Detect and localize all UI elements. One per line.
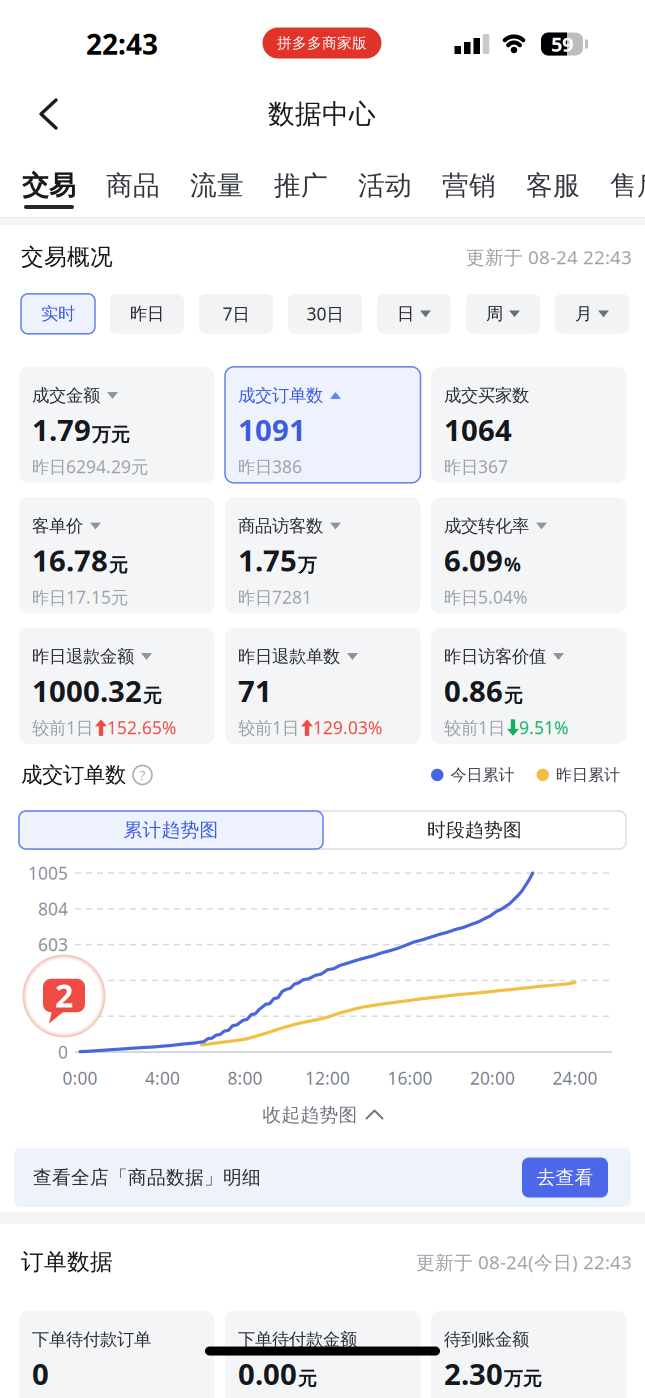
staticText: 804 — [38, 897, 68, 920]
staticText: 下单待付款订单 — [32, 1329, 151, 1350]
staticText: 数据中心 — [268, 98, 376, 130]
staticText: 售后 — [610, 169, 645, 202]
staticText: 0:00 — [62, 1066, 97, 1089]
staticText: ? — [139, 766, 145, 784]
button[interactable]: 30日 — [288, 294, 362, 334]
staticText: 成交买家数 — [444, 385, 529, 406]
staticText: 昨日6294.29元 — [32, 455, 148, 478]
button[interactable]: 收起趋势图 — [0, 1102, 645, 1128]
button[interactable]: 日 — [377, 294, 451, 334]
button[interactable]: 昨日访客价值 — [431, 628, 626, 744]
staticText: 元 — [143, 684, 162, 707]
staticText: 59 — [551, 31, 573, 57]
button[interactable]: 昨日 — [110, 294, 184, 334]
staticText: 成交订单数 — [21, 762, 126, 788]
button[interactable]: 交易 — [22, 169, 76, 202]
button[interactable]: 售后 — [610, 169, 645, 202]
staticText: 1005 — [28, 861, 68, 884]
button[interactable]: 商品 — [106, 169, 160, 202]
button[interactable]: 查看全店「商品数据」明细 — [14, 1148, 631, 1207]
staticText: 交易 — [22, 169, 76, 202]
button[interactable]: 成交订单数 — [225, 367, 420, 483]
button[interactable]: 昨日退款单数 — [225, 628, 420, 744]
staticText: 6.09 — [444, 541, 503, 580]
staticText: 今日累计 — [450, 765, 514, 785]
staticText: 查看全店「商品数据」明细 — [33, 1166, 261, 1189]
button[interactable]: 下单待付款订单 — [19, 1311, 214, 1398]
staticText: 万元 — [504, 1367, 542, 1390]
staticText: 1.75 — [238, 541, 297, 580]
staticText: 201 — [38, 1005, 68, 1028]
staticText: 昨日7281 — [238, 586, 312, 609]
button[interactable]: 月 — [555, 294, 629, 334]
staticText: 24:00 — [552, 1066, 597, 1089]
staticText: 更新于 08-24(今日) 22:43 — [416, 1250, 632, 1274]
staticText: 元 — [298, 1367, 317, 1390]
staticText: 成交转化率 — [444, 515, 529, 537]
staticText: 元 — [109, 554, 128, 577]
staticText: 较前1日 — [444, 716, 505, 739]
staticText: 12:00 — [305, 1066, 350, 1089]
staticText: 去查看 — [536, 1166, 593, 1189]
button[interactable]: 昨日退款金额 — [19, 628, 214, 744]
button[interactable]: 流量 — [190, 169, 244, 202]
staticText: 商品访客数 — [238, 515, 323, 537]
staticText: 2.30 — [444, 1354, 503, 1393]
staticText: 流量 — [190, 169, 244, 202]
staticText: 月 — [575, 303, 592, 324]
staticText: 8:00 — [227, 1066, 262, 1089]
staticText: 0 — [58, 1040, 68, 1063]
button[interactable]: Messages — [22, 954, 106, 1038]
button[interactable]: 实时 — [21, 294, 95, 334]
staticText: 较前1日 — [238, 716, 299, 739]
button[interactable]: 去查看 — [522, 1157, 608, 1197]
staticText: 营销 — [442, 169, 496, 202]
button[interactable]: 推广 — [274, 169, 328, 202]
staticText: 20:00 — [470, 1066, 515, 1089]
button[interactable]: 待到账金额 — [431, 1311, 626, 1398]
staticText: 昨日17.15元 — [32, 586, 128, 609]
staticText: 22:43 — [86, 25, 158, 63]
button[interactable]: 客服 — [526, 169, 580, 202]
staticText: 客单价 — [32, 515, 83, 537]
staticText: 1000.32 — [32, 671, 142, 710]
staticText: 累计趋势图 — [123, 819, 218, 841]
button[interactable]: 周 — [466, 294, 540, 334]
button[interactable]: 营销 — [442, 169, 496, 202]
staticText: 万元 — [92, 423, 130, 446]
staticText: 待到账金额 — [444, 1329, 529, 1350]
staticText: 时段趋势图 — [427, 819, 522, 841]
staticText: 成交金额 — [32, 385, 100, 406]
button[interactable]: 成交转化率 — [431, 497, 626, 613]
button[interactable]: 时段趋势图 — [323, 811, 626, 849]
staticText: 推广 — [274, 169, 328, 202]
staticText: 1091 — [238, 410, 306, 449]
button[interactable]: 活动 — [358, 169, 412, 202]
button[interactable]: 成交金额 — [19, 367, 214, 483]
button[interactable]: 商品访客数 — [225, 497, 420, 613]
staticText: 昨日 — [130, 303, 164, 324]
staticText: 交易概况 — [21, 243, 113, 271]
staticText: 周 — [486, 303, 503, 324]
staticText: 更新于 08-24 22:43 — [466, 244, 632, 269]
button[interactable]: 累计趋势图 — [19, 811, 323, 849]
staticText: 昨日访客价值 — [444, 646, 546, 667]
staticText: 0 — [32, 1354, 49, 1393]
staticText: 402 — [38, 969, 68, 992]
staticText: 收起趋势图 — [262, 1104, 357, 1126]
staticText: 订单数据 — [21, 1248, 113, 1276]
staticText: 实时 — [41, 303, 75, 324]
staticText: 2 — [55, 974, 73, 1016]
button[interactable]: 下单待付款金额 — [225, 1311, 420, 1398]
staticText: 下单待付款金额 — [238, 1329, 357, 1350]
staticText: 1.79 — [32, 410, 91, 449]
staticText: 152.65% — [107, 716, 176, 739]
button[interactable]: 成交买家数 — [431, 367, 626, 483]
staticText: 客服 — [526, 169, 580, 202]
button[interactable]: 7日 — [199, 294, 273, 334]
button[interactable]: 客单价 — [19, 497, 214, 613]
button[interactable]: Back — [22, 87, 76, 141]
staticText: 4:00 — [145, 1066, 180, 1089]
staticText: 昨日退款金额 — [32, 646, 134, 667]
staticText: 日 — [397, 303, 414, 324]
